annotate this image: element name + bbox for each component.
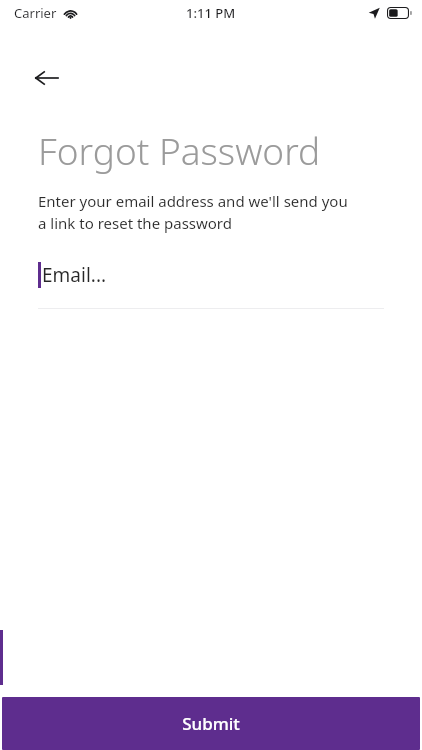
staticText: Email... xyxy=(42,262,107,288)
staticText: Enter your email address and we'll send … xyxy=(38,191,348,234)
button[interactable]: Back xyxy=(24,56,68,100)
staticText: Forgot Password xyxy=(38,125,321,175)
button[interactable]: Submit xyxy=(2,697,420,750)
staticText: Carrier xyxy=(14,4,57,22)
staticText: Submit xyxy=(182,712,240,735)
staticText: 1:11 PM xyxy=(186,4,236,22)
button[interactable]: Email... xyxy=(38,262,384,309)
